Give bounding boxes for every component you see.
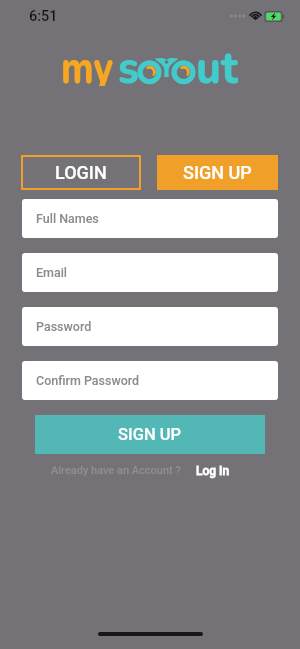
button[interactable]: SIGN UP xyxy=(157,155,278,190)
staticText: SIGN UP xyxy=(118,425,182,444)
staticText: s xyxy=(118,36,139,86)
button[interactable]: Log In xyxy=(190,461,236,481)
staticText: LOGIN xyxy=(55,162,107,183)
staticText: Confirm Password xyxy=(36,373,140,388)
button[interactable]: SIGN UP xyxy=(35,415,265,454)
staticText: ut xyxy=(196,36,238,86)
staticText: my xyxy=(61,36,114,86)
staticText: Email xyxy=(36,265,68,280)
staticText: Full Names xyxy=(36,211,99,226)
button[interactable]: LOGIN xyxy=(21,155,141,190)
button[interactable]: Confirm Password xyxy=(22,361,278,400)
staticText: Already have an Account ? xyxy=(51,464,181,477)
staticText: SIGN UP xyxy=(183,162,252,183)
staticText: 6:51 xyxy=(29,8,58,25)
staticText: Password xyxy=(36,319,92,334)
button[interactable]: Full Names xyxy=(22,199,278,238)
staticText: Log In xyxy=(196,464,230,478)
button[interactable]: Password xyxy=(22,307,278,346)
button[interactable]: Email xyxy=(22,253,278,292)
